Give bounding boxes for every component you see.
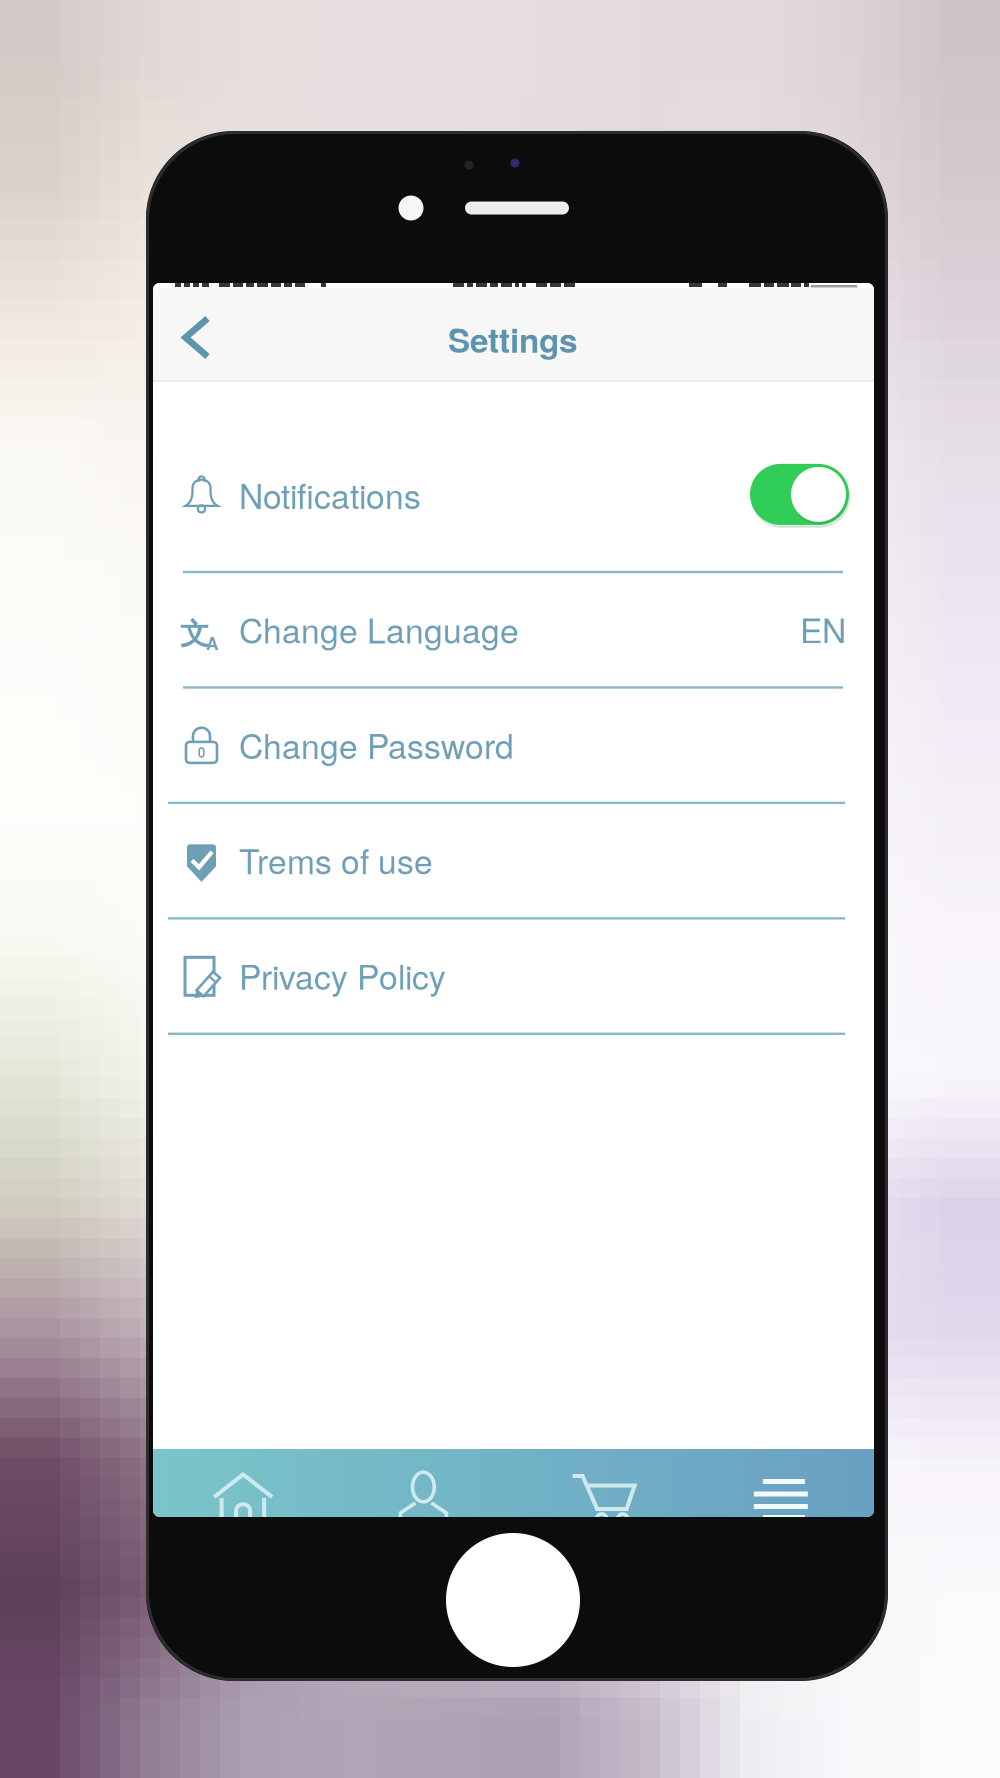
button[interactable]: Menu (694, 1449, 874, 1545)
staticText: Notifications (239, 470, 421, 518)
button[interactable]: 文 (153, 572, 874, 687)
button[interactable]: Home (153, 1449, 333, 1545)
button[interactable]: Account (333, 1449, 513, 1545)
button[interactable]: Notifications (153, 457, 874, 572)
button[interactable]: Cart (513, 1449, 694, 1545)
staticText: 文 (180, 616, 209, 652)
staticText: Privacy Policy (239, 951, 446, 999)
button[interactable]: Back (150, 291, 242, 383)
staticText: EN (800, 605, 846, 653)
staticText: Settings (448, 315, 578, 363)
button[interactable]: Trems of use (153, 803, 874, 918)
button[interactable]: Privacy Policy (153, 918, 874, 1034)
staticText: Trems of use (239, 836, 433, 884)
staticText: Change Password (239, 720, 514, 768)
staticText: Change Language (239, 605, 519, 653)
button[interactable]: Change Password (153, 687, 874, 803)
staticText: A (206, 630, 219, 655)
